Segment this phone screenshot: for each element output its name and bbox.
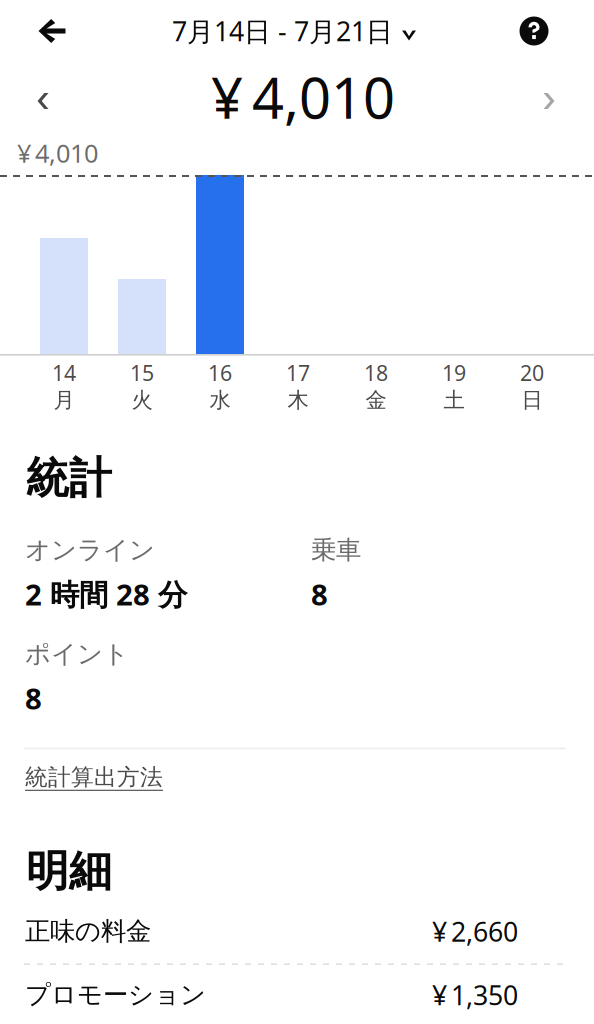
- staticText: 木: [287, 387, 308, 413]
- staticText: 統計: [26, 452, 112, 504]
- staticText: 14: [52, 359, 76, 387]
- button[interactable]: 正味の料金: [0, 897, 594, 962]
- button[interactable]: 統計算出方法: [0, 749, 163, 795]
- staticText: 正味の料金: [25, 916, 151, 947]
- button[interactable]: 7月14日 - 7月21日: [169, 6, 425, 56]
- staticText: 乗車: [311, 534, 361, 566]
- staticText: ポイント: [25, 639, 129, 670]
- button[interactable]: Previous week: [16, 64, 70, 128]
- staticText: 16: [208, 359, 232, 387]
- staticText: 20: [520, 359, 544, 387]
- staticText: ¥ 4,010: [17, 136, 98, 170]
- staticText: 統計算出方法: [25, 763, 163, 791]
- button[interactable]: Back: [25, 6, 79, 56]
- staticText: 明細: [26, 845, 112, 897]
- staticText: 8: [25, 679, 42, 718]
- staticText: 火: [131, 387, 152, 413]
- staticText: プロモーション: [25, 979, 206, 1010]
- staticText: 月: [53, 387, 74, 413]
- staticText: 金: [365, 387, 386, 413]
- staticText: ¥ 1,350: [432, 977, 518, 1013]
- button[interactable]: Help: [505, 6, 563, 56]
- staticText: 2 時間 28 分: [25, 575, 187, 614]
- staticText: ¥ 4,010: [211, 60, 395, 134]
- staticText: ¥ 2,660: [432, 914, 518, 949]
- staticText: 日: [521, 387, 542, 413]
- button[interactable]: プロモーション: [0, 961, 594, 1024]
- staticText: 7月14日 - 7月21日: [172, 13, 393, 49]
- staticText: 19: [442, 359, 466, 387]
- staticText: オンライン: [25, 534, 155, 566]
- staticText: 15: [130, 359, 154, 387]
- staticText: 水: [209, 387, 230, 413]
- staticText: 土: [443, 387, 464, 413]
- button[interactable]: Next week: [522, 64, 576, 128]
- staticText: 8: [311, 575, 328, 614]
- staticText: 18: [364, 359, 388, 387]
- staticText: 17: [286, 359, 310, 387]
